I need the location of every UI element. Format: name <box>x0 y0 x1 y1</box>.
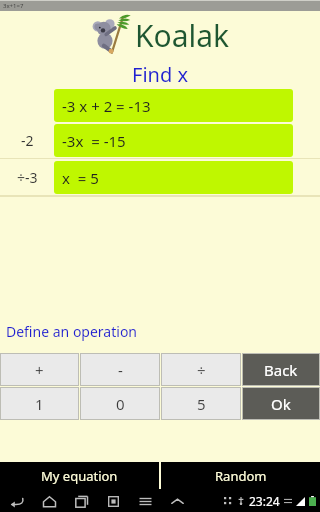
staticText: 3x+1=7 <box>3 2 24 10</box>
staticText: -2 <box>21 131 34 150</box>
staticText: ÷ <box>197 360 206 380</box>
staticText: -3 x + 2 = -13 <box>62 96 151 116</box>
button[interactable]: Random <box>161 462 320 489</box>
button[interactable]: Home <box>40 492 58 510</box>
staticText: Find x <box>132 61 188 88</box>
staticText: 5 <box>197 394 206 414</box>
staticText: -3x = -15 <box>62 131 126 151</box>
button[interactable]: 5 <box>161 387 241 420</box>
button[interactable]: ÷ <box>161 353 241 386</box>
button[interactable]: Menu <box>136 492 154 510</box>
button[interactable]: Ok <box>242 387 320 420</box>
staticText: 1 <box>35 394 44 414</box>
button[interactable]: Back <box>8 492 26 510</box>
staticText: 23:24 <box>249 493 280 509</box>
staticText: + <box>35 360 44 380</box>
button[interactable]: -3x = -15 <box>54 124 293 157</box>
button[interactable]: Screenshot <box>104 492 122 510</box>
button[interactable]: Recents <box>72 492 90 510</box>
staticText: ÷-3 <box>17 168 38 187</box>
staticText: My equation <box>41 467 118 485</box>
button[interactable]: 0 <box>80 387 160 420</box>
button[interactable]: -3 x + 2 = -13 <box>54 89 293 122</box>
button[interactable]: - <box>80 353 160 386</box>
staticText: - <box>118 360 123 380</box>
button[interactable]: Expand <box>168 492 186 510</box>
staticText: Define an operation <box>6 322 137 341</box>
staticText: Koalak <box>135 15 230 56</box>
button[interactable]: x = 5 <box>54 161 293 194</box>
staticText: Random <box>215 467 267 485</box>
button[interactable]: Back <box>242 353 320 386</box>
staticText: 0 <box>116 394 125 414</box>
button[interactable]: 1 <box>0 387 79 420</box>
staticText: Ok <box>271 394 291 414</box>
button[interactable]: My equation <box>0 462 159 489</box>
staticText: Back <box>264 360 298 380</box>
staticText: x = 5 <box>62 168 99 188</box>
button[interactable]: + <box>0 353 79 386</box>
